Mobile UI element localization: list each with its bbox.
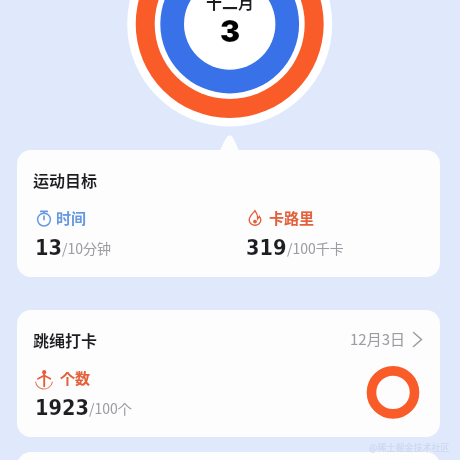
staticText: 卡路里 <box>269 207 315 229</box>
staticText: 3 <box>220 13 241 49</box>
staticText: 319 <box>246 235 287 260</box>
staticText: 时间 <box>56 207 87 229</box>
staticText: 13 <box>35 235 62 260</box>
button[interactable]: 12月3日 <box>350 328 426 350</box>
staticText: 1923 <box>35 395 89 420</box>
staticText: 个数 <box>60 367 91 389</box>
staticText: /10分钟 <box>62 238 112 258</box>
button[interactable]: 运动目标 <box>17 150 440 277</box>
staticText: 12月3日 <box>350 328 405 350</box>
other: Daily goal progress ring <box>366 365 420 419</box>
staticText: @稀土掘金技术社区 <box>369 441 450 454</box>
staticText: 跳绳打卡 <box>33 328 98 351</box>
staticText: /100千卡 <box>287 238 344 258</box>
staticText: /100个 <box>89 398 132 418</box>
button[interactable]: 跳绳打卡 <box>17 310 440 437</box>
staticText: 运动目标 <box>33 168 98 191</box>
staticText: 十二月 <box>206 0 255 13</box>
button[interactable] <box>17 452 440 460</box>
